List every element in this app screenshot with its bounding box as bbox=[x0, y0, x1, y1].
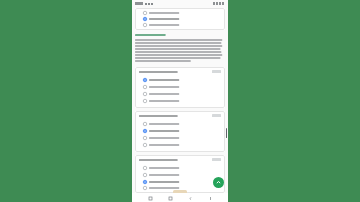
button[interactable] bbox=[139, 90, 221, 97]
button[interactable] bbox=[139, 171, 221, 178]
button[interactable]: Recent apps bbox=[148, 196, 152, 200]
button[interactable] bbox=[139, 127, 221, 134]
button[interactable] bbox=[139, 178, 221, 185]
button[interactable] bbox=[139, 16, 221, 22]
button[interactable] bbox=[139, 76, 221, 83]
button[interactable]: Next bbox=[213, 177, 224, 188]
button[interactable] bbox=[139, 97, 221, 104]
button[interactable] bbox=[139, 134, 221, 141]
button[interactable] bbox=[139, 22, 221, 28]
button[interactable]: Home bbox=[168, 196, 172, 200]
button[interactable] bbox=[139, 120, 221, 127]
button[interactable]: Screenshot bbox=[208, 196, 212, 200]
button[interactable] bbox=[139, 164, 221, 171]
button[interactable] bbox=[139, 185, 221, 190]
button[interactable] bbox=[139, 141, 221, 148]
button[interactable] bbox=[139, 10, 221, 16]
button[interactable]: Back bbox=[188, 196, 192, 200]
button[interactable] bbox=[139, 83, 221, 90]
